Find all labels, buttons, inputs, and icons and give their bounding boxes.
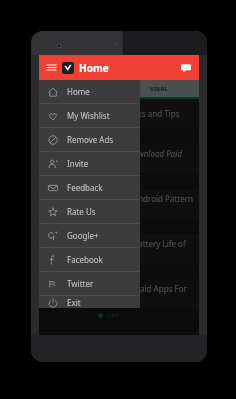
button[interactable]: Exit [39,296,140,308]
button[interactable]: Best 5 Apps / Games To Download Paid App… [39,144,199,187]
staticText: My Wishlist [67,110,110,121]
button[interactable]: Open navigation drawer [44,60,59,75]
button[interactable]: Home [39,80,140,103]
staticText: Best 5 Apps / Games To Download Paid App… [44,148,194,170]
staticText: Facebook [67,254,103,265]
button[interactable]: Feedback [39,176,140,199]
staticText: Google+ [67,230,99,241]
button[interactable]: Messages [178,60,194,76]
button[interactable]: Facebook [39,248,140,271]
staticText: Exit [67,297,81,308]
staticText: Twitter [67,278,94,289]
staticText: Top 5 Ways To Increase Battery Life of A… [44,238,194,260]
button[interactable]: Google+ [39,224,140,247]
staticText: How To Hack or Bypass Android Pattern Lo… [44,193,194,215]
staticText: Feedback [67,182,103,193]
staticText: Like [107,311,119,319]
staticText: Home [79,61,109,75]
staticText: Remove Ads [67,134,114,145]
staticText: Like [107,266,119,274]
staticText: Invite [67,158,89,169]
staticText: Best Ways To Download Paid Apps For Free [44,283,194,305]
staticText: Like [107,221,119,229]
button[interactable]: Twitter [39,272,140,295]
button[interactable]: Top Android Hacking Tricks and Tips [39,99,199,142]
staticText: VIRAL [150,85,168,93]
staticText: Home [67,86,90,97]
staticText: Top Android Hacking Tricks and Tips [44,108,180,119]
button[interactable]: Remove Ads [39,128,140,151]
button[interactable]: VIRAL [119,80,199,97]
staticText: Like [107,131,119,139]
staticText: Rate Us [67,206,96,217]
button[interactable]: Top 5 Ways To Increase Battery Life of A… [39,234,199,277]
button[interactable]: How To Hack or Bypass Android Pattern Lo… [39,189,199,232]
button[interactable]: Invite [39,152,140,175]
button[interactable]: Rate Us [39,200,140,223]
button[interactable]: Best Ways To Download Paid Apps For Free [39,279,199,322]
button[interactable]: My Wishlist [39,104,140,127]
